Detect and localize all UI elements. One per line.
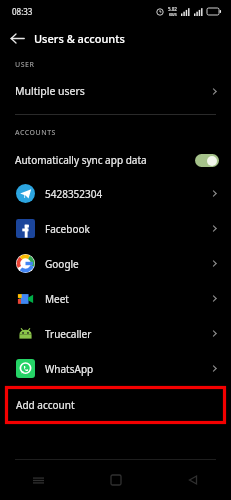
button[interactable]: Back	[154, 460, 231, 500]
button[interactable]: Recents	[0, 460, 77, 500]
staticText: ACCOUNTS	[15, 128, 56, 138]
button[interactable]: Multiple users	[0, 76, 231, 106]
button[interactable]: Facebook	[0, 211, 231, 246]
staticText: Multiple users	[15, 84, 85, 98]
staticText: 5428352304	[45, 187, 103, 201]
staticText: Automatically sync app data	[15, 153, 147, 167]
staticText: WhatsApp	[45, 362, 94, 376]
staticText: KB/S	[169, 12, 177, 17]
button[interactable]: Google	[0, 246, 231, 281]
button[interactable]: 5428352304	[0, 176, 231, 211]
staticText: Add account	[16, 398, 75, 412]
button[interactable]: Add account	[5, 386, 226, 424]
button[interactable]: WhatsApp	[0, 351, 231, 386]
staticText: Facebook	[45, 222, 90, 236]
staticText: Truecaller	[45, 327, 92, 341]
staticText: Users & accounts	[34, 31, 125, 46]
staticText: USER	[15, 60, 35, 70]
staticText: Meet	[45, 292, 69, 306]
button[interactable]: Home	[77, 460, 154, 500]
button[interactable]: Automatically sync app data	[0, 144, 231, 176]
staticText: Google	[45, 257, 79, 271]
button[interactable]: Truecaller	[0, 316, 231, 351]
staticText: 5.02	[168, 6, 177, 12]
staticText: 08:33	[12, 6, 33, 17]
button[interactable]: Back	[0, 22, 34, 54]
button[interactable]: Meet	[0, 281, 231, 316]
